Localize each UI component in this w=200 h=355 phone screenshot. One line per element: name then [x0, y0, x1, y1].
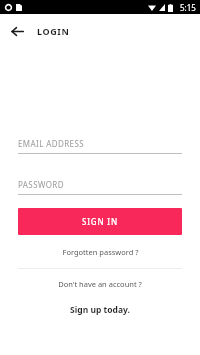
staticText: LOGIN: [37, 25, 70, 37]
staticText: Don't have an account ?: [58, 279, 142, 289]
staticText: Sign up today.: [70, 304, 130, 316]
button[interactable]: Forgotten password ?: [0, 243, 200, 261]
staticText: PASSWORD: [18, 179, 64, 190]
staticText: Forgotten password ?: [62, 247, 139, 257]
button[interactable]: Sign up today.: [0, 302, 200, 318]
button[interactable]: PASSWORD: [18, 177, 182, 191]
staticText: 5:15: [180, 2, 196, 13]
button[interactable]: EMAIL ADDRESS: [18, 136, 182, 150]
button[interactable]: Back: [6, 20, 28, 42]
staticText: EMAIL ADDRESS: [18, 138, 84, 149]
staticText: SIGN IN: [82, 216, 118, 227]
button[interactable]: SIGN IN: [18, 208, 182, 235]
